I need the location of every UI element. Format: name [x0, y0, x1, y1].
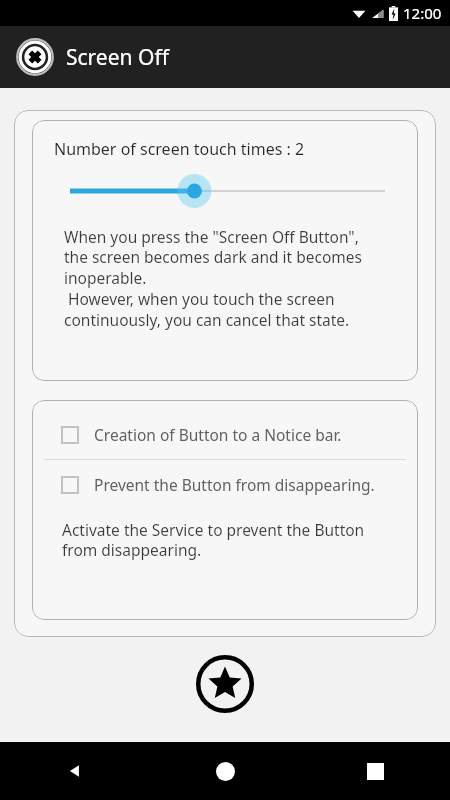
staticText: Activate the Service to prevent the Butt…: [62, 519, 365, 561]
staticText: Prevent the Button from disappearing.: [94, 474, 375, 495]
staticText: Number of screen touch times : 2: [54, 138, 305, 160]
button[interactable]: Back: [0, 742, 150, 800]
staticText: Creation of Button to a Notice bar.: [94, 424, 342, 445]
staticText: When you press the "Screen Off Button", …: [64, 226, 362, 331]
staticText: 12:00: [403, 3, 442, 23]
button[interactable]: Recent apps: [300, 742, 450, 800]
button[interactable]: Prevent the Button from disappearing.: [32, 460, 418, 509]
button[interactable]: Screen Off Button: [193, 652, 257, 716]
button[interactable]: Home: [150, 742, 300, 800]
button[interactable]: Touch times slider: [32, 174, 418, 208]
button[interactable]: Creation of Button to a Notice bar.: [32, 410, 418, 459]
button[interactable]: App icon: [14, 36, 56, 78]
staticText: Screen Off: [66, 43, 169, 72]
